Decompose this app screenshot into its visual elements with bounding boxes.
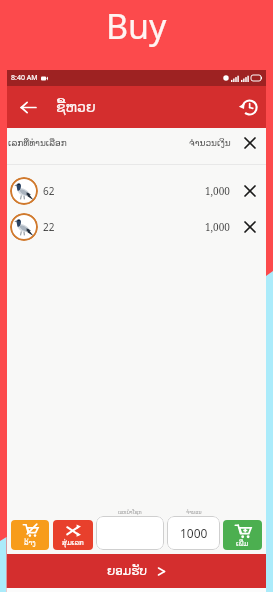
button[interactable]: ລ້າງ [11, 520, 49, 550]
button[interactable]: 62 [7, 173, 266, 209]
button[interactable]: ສຸ່ມເລກ [53, 520, 93, 550]
staticText: ຈຳນວນເງິນ [189, 138, 231, 148]
staticText: 1000 [180, 525, 208, 541]
staticText: 1,000 [205, 220, 230, 234]
button[interactable]: ຍອມຮັບ [7, 554, 266, 588]
button[interactable]: Back [16, 95, 40, 119]
staticText: 62 [43, 184, 55, 198]
button[interactable]: 22 [7, 209, 266, 245]
staticText: ລ້າງ [24, 539, 36, 547]
button[interactable]: History [234, 93, 262, 121]
staticText: ເພີ່ມ [236, 540, 249, 548]
staticText: ຈຳນວນ [186, 509, 202, 515]
button[interactable]: ເພີ່ມ [223, 520, 262, 550]
staticText: 8:40 AM [11, 73, 38, 83]
staticText: ຊື້ຫວຍ [56, 99, 96, 115]
button[interactable]: Close [242, 135, 258, 151]
staticText: ເລກທີ່ທ່ານເລືອກ [8, 138, 67, 148]
staticText: ເລກນຳໂຊກ [118, 509, 142, 515]
staticText: 22 [43, 220, 55, 234]
staticText: 1,000 [205, 184, 230, 198]
button[interactable]: 1000 [167, 516, 220, 550]
staticText: Buy [106, 3, 167, 49]
button[interactable] [96, 516, 164, 550]
button[interactable]: Remove [242, 183, 258, 199]
staticText: ຍອມຮັບ [107, 564, 147, 578]
button[interactable]: Remove [242, 219, 258, 235]
staticText: ສຸ່ມເລກ [62, 539, 84, 547]
